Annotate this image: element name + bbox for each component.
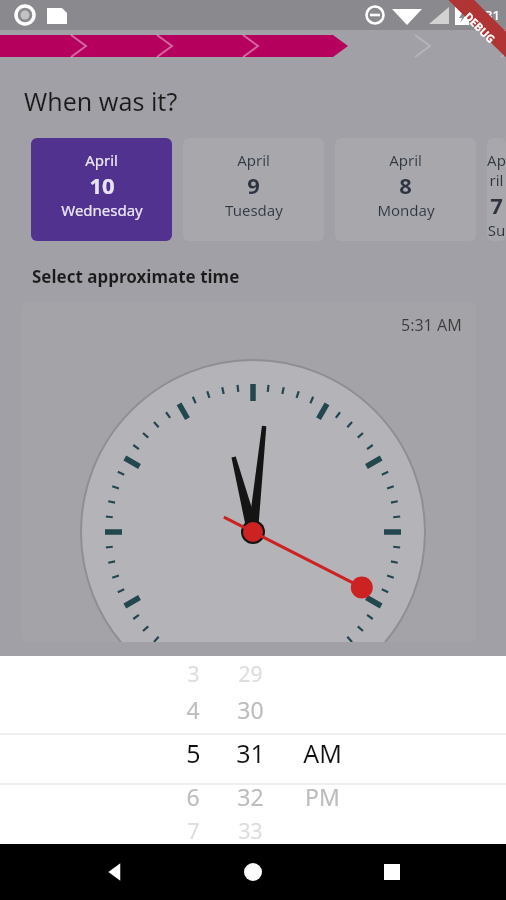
staticText: Monday xyxy=(377,200,435,220)
staticText: Wednesday xyxy=(61,200,143,220)
staticText: April xyxy=(85,150,118,170)
staticText: 7 xyxy=(187,817,200,844)
staticText: 6 xyxy=(186,781,200,812)
staticText: 29 xyxy=(238,660,263,689)
button[interactable]: AM xyxy=(289,656,355,844)
staticText: AM xyxy=(303,736,342,770)
staticText: 8 xyxy=(399,170,412,200)
staticText: When was it? xyxy=(24,84,178,118)
staticText: 5:31 xyxy=(474,6,500,24)
staticText: 5 xyxy=(186,736,201,770)
button[interactable]: Home xyxy=(229,848,277,896)
button[interactable]: 3 xyxy=(173,656,213,844)
staticText: Select approximate time xyxy=(32,265,240,288)
staticText: 33 xyxy=(238,817,263,844)
staticText: 30 xyxy=(237,694,264,725)
button[interactable]: April xyxy=(183,138,324,241)
button[interactable]: April xyxy=(31,138,172,241)
staticText: 4 xyxy=(186,694,200,725)
staticText: 10 xyxy=(89,170,115,200)
staticText: 5:31 AM xyxy=(401,314,462,336)
staticText: Tuesday xyxy=(225,200,283,220)
staticText: April xyxy=(389,150,422,170)
button[interactable]: 29 xyxy=(225,656,275,844)
staticText: Sunday xyxy=(487,220,506,241)
staticText: April xyxy=(237,150,270,170)
button[interactable]: Back xyxy=(91,848,139,896)
staticText: DEBUG xyxy=(461,9,499,46)
staticText: 32 xyxy=(237,781,264,812)
staticText: April xyxy=(487,150,506,190)
staticText: 31 xyxy=(236,736,265,770)
staticText: 7 xyxy=(490,190,503,220)
staticText: 9 xyxy=(247,170,260,200)
button[interactable]: Recents xyxy=(368,848,416,896)
button[interactable]: April xyxy=(487,138,506,241)
staticText: PM xyxy=(305,781,340,812)
button[interactable]: April xyxy=(335,138,476,241)
staticText: 3 xyxy=(187,660,200,689)
